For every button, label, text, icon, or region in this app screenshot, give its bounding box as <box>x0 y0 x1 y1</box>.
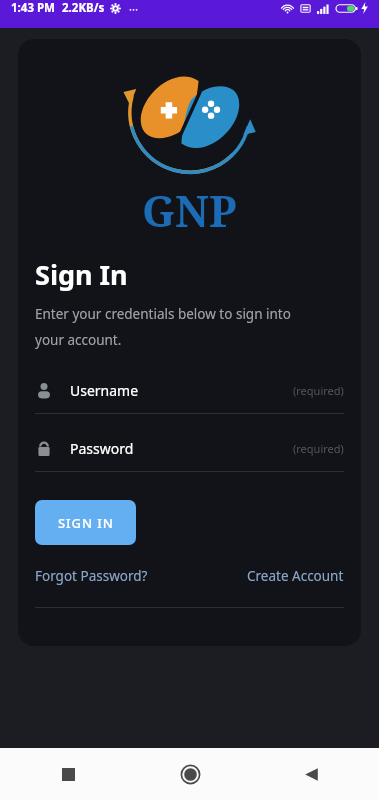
button[interactable]: Forgot Password? <box>35 564 148 588</box>
button[interactable]: Password <box>35 435 344 472</box>
staticText: (required) <box>293 383 344 398</box>
staticText: 2.2KB/s <box>62 0 105 16</box>
staticText: Username <box>70 381 139 400</box>
staticText: Create Account <box>247 567 344 585</box>
staticText: Password <box>70 439 134 458</box>
staticText: Forgot Password? <box>35 567 148 585</box>
staticText: Sign In <box>35 256 128 293</box>
button[interactable]: SIGN IN <box>35 500 136 545</box>
button[interactable]: Create Account <box>247 564 344 588</box>
button[interactable]: Recent apps <box>46 752 90 796</box>
button[interactable]: Username <box>35 377 344 414</box>
staticText: GNP <box>142 181 237 240</box>
staticText: SIGN IN <box>58 514 114 532</box>
staticText: Enter your credentials below to sign int… <box>35 305 322 349</box>
button[interactable]: Home <box>168 752 212 796</box>
button[interactable]: Back <box>289 752 333 796</box>
staticText: 1:43 PM <box>11 0 55 16</box>
staticText: (required) <box>293 441 344 456</box>
